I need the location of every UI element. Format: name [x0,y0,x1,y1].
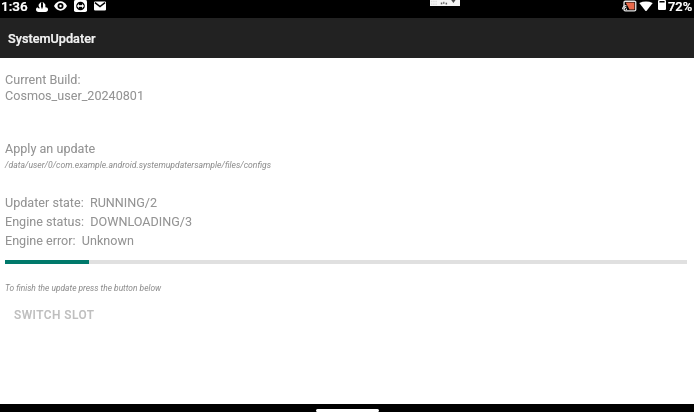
staticText: Engine error: Unknown [5,233,134,248]
staticText: Cosmos_user_20240801 [5,88,144,103]
other: Battery [658,0,666,10]
staticText: SystemUpdater [8,31,96,46]
staticText: Apply an update [5,141,96,156]
other: USB debugging [36,2,48,12]
button[interactable]: SWITCH SLOT [5,302,104,328]
other: Wi-Fi [639,1,653,11]
other: Resize [74,0,87,12]
staticText: SWITCH SLOT [14,308,95,322]
button[interactable]: /data/user/0/com.example.android.systemu… [5,156,689,173]
other: New mail [94,1,106,11]
staticText: Updater state: RUNNING/2 [5,195,158,210]
staticText: /data/user/0/com.example.android.systemu… [5,160,272,170]
other: Screen recording [54,1,67,11]
staticText: Engine status: DOWNLOADING/3 [5,214,193,229]
staticText: Current Build: [5,72,81,87]
staticText: 1:36 [1,0,28,14]
button[interactable]: Home [316,409,379,412]
other: Cast [623,1,636,12]
staticText: To finish the update press the button be… [5,283,162,293]
staticText: 72% [668,0,693,14]
